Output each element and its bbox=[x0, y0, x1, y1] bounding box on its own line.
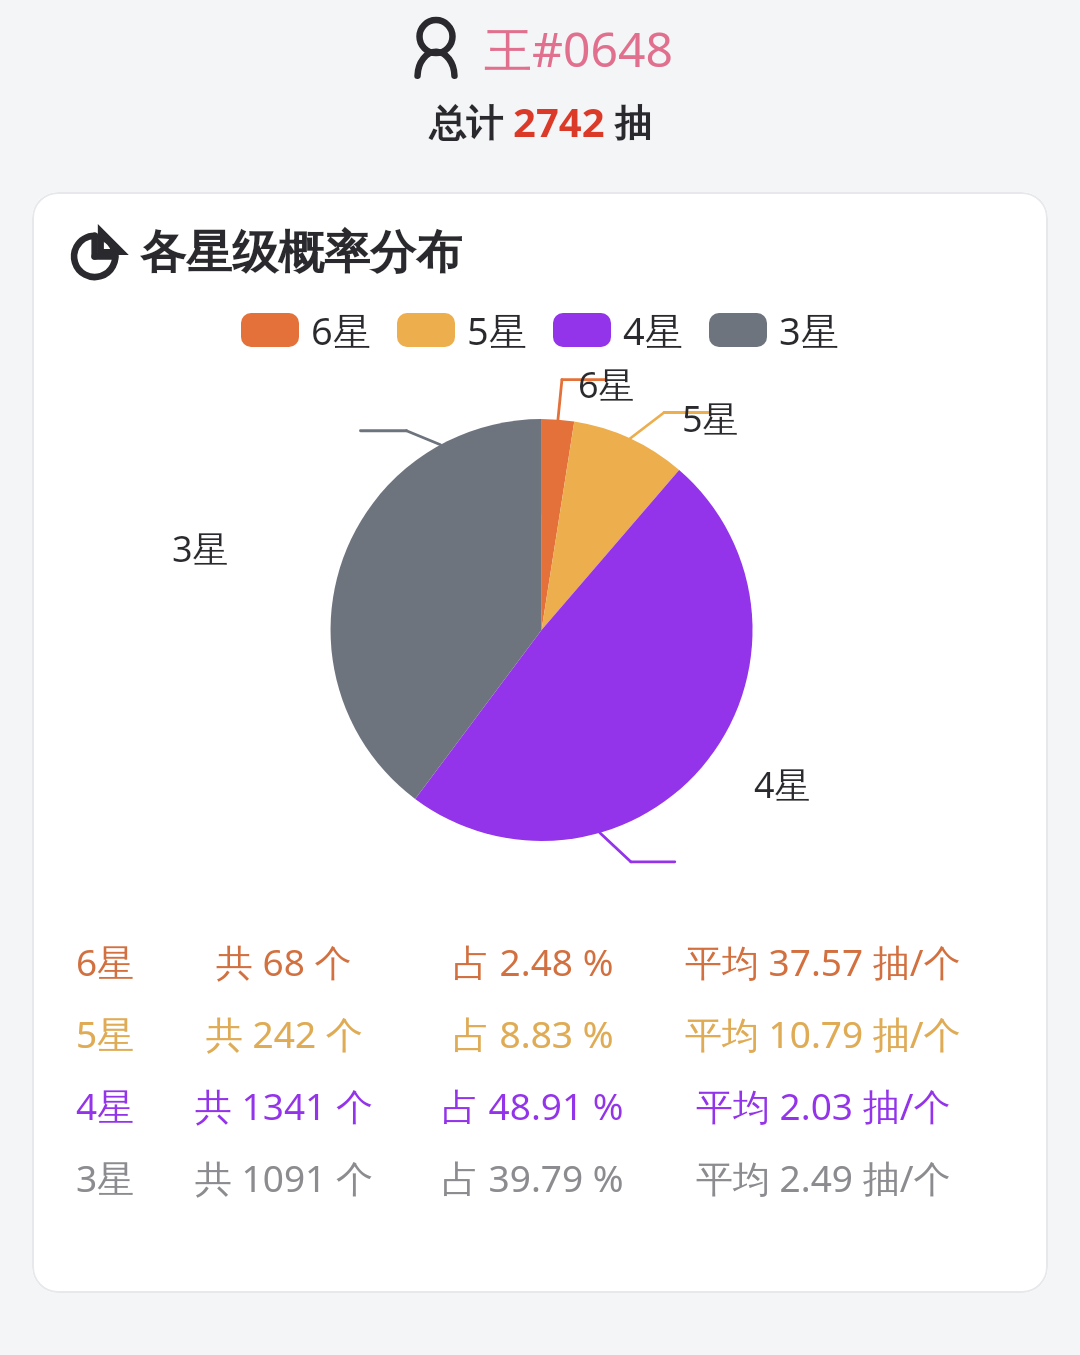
staticText: 占 2.48 % bbox=[453, 936, 614, 987]
staticText: 3星 bbox=[172, 524, 229, 573]
button[interactable]: Pie chart bbox=[32, 192, 1048, 1293]
staticText: 3星 bbox=[779, 304, 839, 356]
button[interactable]: 4星 bbox=[32, 1080, 1048, 1131]
staticText: 3星 bbox=[76, 1152, 135, 1203]
staticText: 5星 bbox=[467, 304, 527, 356]
button[interactable]: 4星 bbox=[553, 304, 683, 356]
staticText: 5星 bbox=[682, 394, 739, 443]
button[interactable]: 3星 bbox=[32, 1152, 1048, 1203]
button[interactable]: 6星 bbox=[32, 936, 1048, 987]
staticText: 占 39.79 % bbox=[442, 1152, 624, 1203]
staticText: 6星 bbox=[578, 360, 635, 409]
staticText: 各星级概率分布 bbox=[140, 224, 462, 282]
staticText: 4星 bbox=[623, 304, 683, 356]
staticText: 2742 bbox=[513, 94, 605, 148]
staticText: 6星 bbox=[76, 936, 135, 987]
button[interactable]: 6星 bbox=[241, 304, 371, 356]
staticText: 抽 bbox=[605, 96, 652, 147]
staticText: 平均 2.49 抽/个 bbox=[696, 1152, 951, 1203]
staticText: 王#0648 bbox=[484, 16, 673, 82]
staticText: 6星 bbox=[311, 304, 371, 356]
staticText: 平均 10.79 抽/个 bbox=[685, 1008, 961, 1059]
staticText: 5星 bbox=[76, 1008, 135, 1059]
other: Pie chart bbox=[68, 224, 126, 282]
staticText: 占 8.83 % bbox=[453, 1008, 614, 1059]
staticText: 4星 bbox=[76, 1080, 135, 1131]
button[interactable]: 3星 bbox=[709, 304, 839, 356]
staticText: 共 1341 个 bbox=[195, 1080, 373, 1131]
staticText: 平均 37.57 抽/个 bbox=[685, 936, 961, 987]
button[interactable]: 5星 bbox=[397, 304, 527, 356]
staticText: 4星 bbox=[754, 760, 811, 809]
staticText: 共 242 个 bbox=[206, 1008, 363, 1059]
staticText: 共 68 个 bbox=[216, 936, 352, 987]
other: User profile bbox=[408, 18, 464, 80]
staticText: 占 48.91 % bbox=[442, 1080, 624, 1131]
staticText: 总计 bbox=[429, 96, 513, 147]
staticText: 共 1091 个 bbox=[195, 1152, 373, 1203]
button[interactable]: 5星 bbox=[32, 1008, 1048, 1059]
staticText: 平均 2.03 抽/个 bbox=[696, 1080, 951, 1131]
